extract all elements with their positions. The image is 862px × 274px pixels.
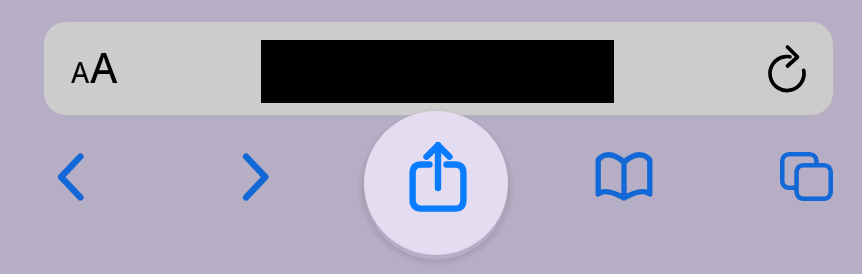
button[interactable]: Bookmarks <box>588 140 660 214</box>
button[interactable]: Page settings <box>55 22 140 92</box>
button[interactable]: Share <box>364 111 508 255</box>
staticText: A <box>71 53 90 91</box>
button[interactable]: Reload <box>755 38 818 103</box>
button[interactable] <box>44 22 833 115</box>
button[interactable]: Forward <box>219 140 291 214</box>
staticText: A <box>90 38 118 95</box>
button[interactable]: Back <box>34 140 106 214</box>
button[interactable]: Tabs <box>770 139 842 213</box>
